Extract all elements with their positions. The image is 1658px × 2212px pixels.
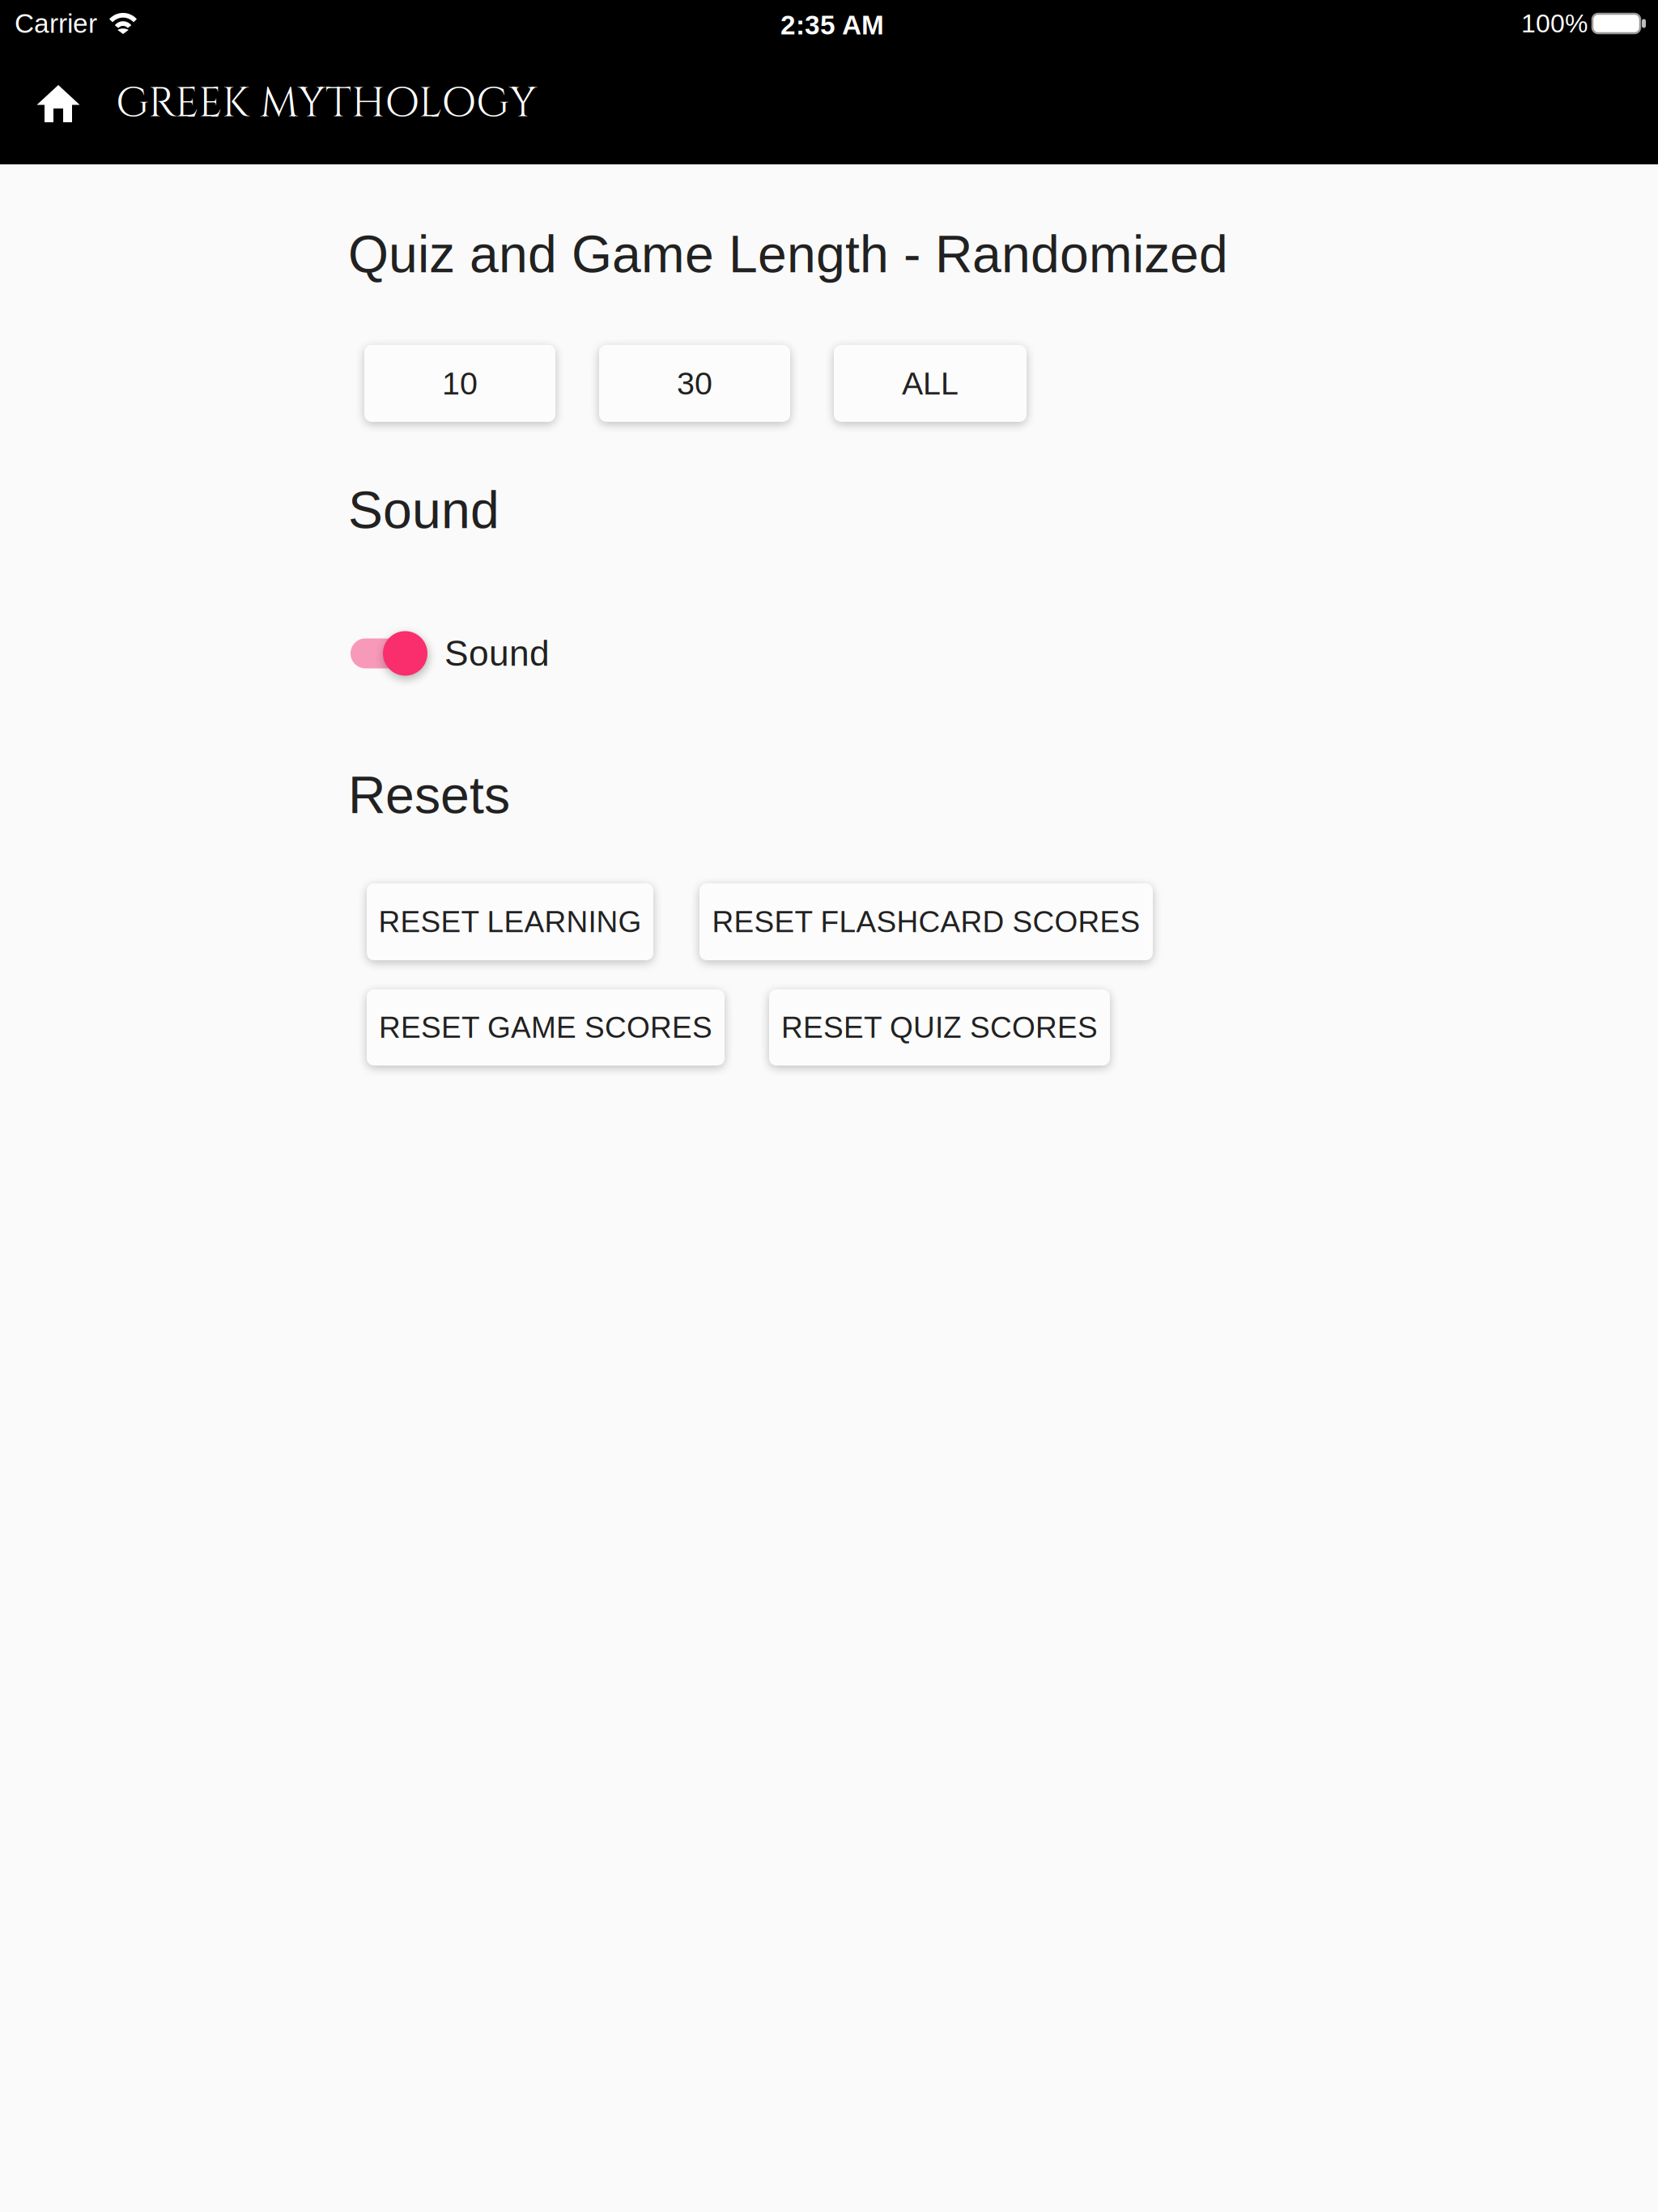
staticText: ALL <box>902 366 959 401</box>
staticText: Resets <box>348 766 510 824</box>
button[interactable]: 30 <box>599 345 790 422</box>
staticText: 2:35 AM <box>780 10 884 40</box>
staticText: RESET FLASHCARD SCORES <box>712 905 1140 938</box>
staticText: Sound <box>444 633 550 673</box>
button[interactable]: Sound <box>351 627 551 679</box>
button[interactable]: ALL <box>834 345 1027 422</box>
button[interactable]: RESET QUIZ SCORES <box>769 989 1110 1066</box>
button[interactable]: 10 <box>364 345 555 422</box>
button[interactable]: RESET LEARNING <box>367 883 653 960</box>
button[interactable]: RESET GAME SCORES <box>367 989 725 1066</box>
staticText: RESET GAME SCORES <box>379 1011 712 1044</box>
staticText: 30 <box>677 366 712 401</box>
staticText: GREEK MYTHOLOGY <box>116 76 537 132</box>
button[interactable]: RESET FLASHCARD SCORES <box>699 883 1153 960</box>
staticText: 10 <box>442 366 478 401</box>
button[interactable]: Home <box>18 66 99 141</box>
staticText: Carrier <box>15 8 97 39</box>
staticText: Quiz and Game Length - Randomized <box>348 225 1228 283</box>
staticText: 100% <box>1521 9 1588 38</box>
staticText: RESET LEARNING <box>378 905 642 938</box>
staticText: RESET QUIZ SCORES <box>781 1011 1098 1044</box>
staticText: Sound <box>348 481 500 539</box>
